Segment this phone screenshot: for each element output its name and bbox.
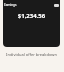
button[interactable] xyxy=(54,4,59,7)
staticText: Individual offer breakdown xyxy=(6,52,57,57)
staticText: $1,234.56 xyxy=(3,12,60,20)
staticText: Earnings xyxy=(4,3,17,7)
